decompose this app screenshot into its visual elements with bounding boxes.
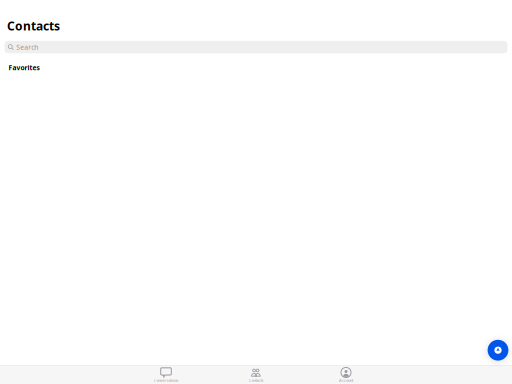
staticText: Favorites bbox=[8, 63, 39, 72]
staticText: Contacts bbox=[7, 18, 60, 34]
button[interactable]: Search bbox=[4, 41, 507, 53]
button[interactable]: Conversations bbox=[121, 366, 211, 384]
button[interactable]: Contacts bbox=[211, 366, 301, 384]
staticText: Conversations bbox=[153, 378, 178, 383]
staticText: Search bbox=[16, 43, 38, 52]
button[interactable]: Account bbox=[301, 366, 391, 384]
button[interactable]: New message bbox=[488, 340, 508, 361]
staticText: Account bbox=[339, 378, 353, 383]
staticText: Contacts bbox=[248, 378, 263, 383]
